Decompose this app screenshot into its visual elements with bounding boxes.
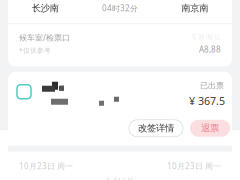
staticText: G1550 [107, 175, 133, 180]
button[interactable]: 退票 [190, 120, 230, 137]
staticText: 车厢/座位 [191, 32, 221, 41]
staticText: 已出票 [200, 81, 224, 90]
staticText: ¥ 367.5 [189, 94, 225, 108]
staticText: 南京南 [181, 2, 208, 14]
staticText: A8,88 [199, 44, 221, 55]
staticText: 候车室/检票口 [19, 32, 70, 43]
staticText: 长沙南 [32, 2, 59, 14]
staticText: 改签详情 [138, 122, 174, 134]
button[interactable]: 改签详情 [129, 120, 183, 137]
staticText: 10月23日 周一 [19, 161, 73, 171]
staticText: *仅供参考 [19, 46, 51, 55]
staticText: 退票 [201, 122, 219, 134]
button[interactable]: Select passenger [17, 85, 31, 99]
staticText: 10月23日 周一 [167, 161, 221, 171]
staticText: 04时32分 [102, 3, 138, 13]
